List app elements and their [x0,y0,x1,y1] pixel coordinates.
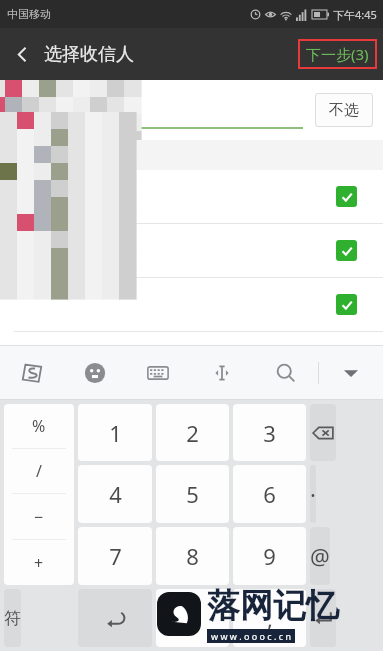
button[interactable]: 7 [78,527,152,585]
button[interactable]: 5 [156,465,229,523]
staticText: % [32,415,46,437]
staticText: , [267,603,273,633]
other: 已选中 [336,240,357,261]
staticText: − [34,506,44,528]
button[interactable]: 搜索 [254,346,318,399]
staticText: · [310,479,316,509]
button[interactable]: 1 [78,404,152,461]
staticText: w w w . o o o c . c n [211,630,291,642]
staticText: 0 [186,603,199,633]
button[interactable]: 收起键盘 [319,346,383,399]
other: 已选中 [336,186,357,207]
button[interactable]: 不选 [315,93,373,127]
button[interactable]: 输入法 [0,346,63,399]
button[interactable]: 确定 [310,589,336,647]
staticText: 9 [263,541,276,571]
staticText: 7 [109,541,122,571]
button[interactable]: 符 [4,589,21,647]
button[interactable]: 4 [78,465,152,523]
button[interactable]: 已选中 [0,278,383,331]
button[interactable]: @ [310,527,330,585]
staticText: 联系人 [10,148,46,163]
staticText: 5 [186,479,199,509]
button[interactable]: 0 [156,589,229,647]
button[interactable]: 2 [156,404,229,461]
staticText: 落网记忆 [207,585,339,627]
staticText: 2 [186,418,199,448]
button[interactable]: % [4,404,74,448]
staticText: + [34,552,44,574]
staticText: 下一步(3) [306,44,369,64]
staticText: 1 [109,418,122,448]
button[interactable]: 返回 [78,589,152,647]
button[interactable]: · [310,465,316,523]
button[interactable]: 返回 [0,32,44,76]
staticText: 不选 [329,101,359,120]
button[interactable]: 6 [233,465,306,523]
button[interactable]: 删除 [310,404,336,461]
staticText: / [36,460,42,482]
button[interactable]: 表情 [63,346,126,399]
button[interactable]: − [4,494,74,539]
other: 已选中 [336,294,357,315]
button[interactable]: / [4,449,74,493]
staticText: 6 [263,479,276,509]
button[interactable]: 移动光标 [190,346,254,399]
staticText: 4 [109,479,122,509]
button[interactable]: 已选中 [0,224,383,277]
staticText: 中国移动 [7,7,51,21]
button[interactable]: 已选中 [0,170,383,223]
staticText: 选择收信人 [44,43,134,66]
button[interactable]: 8 [156,527,229,585]
staticText: 符 [4,608,21,629]
button[interactable]: + [4,540,74,585]
button[interactable]: 3 [233,404,306,461]
staticText: @ [310,541,330,571]
button[interactable]: , [233,589,306,647]
staticText: 3 [263,418,276,448]
button[interactable]: 下一步(3) [298,39,377,69]
button[interactable]: 键盘 [126,346,190,399]
button[interactable]: 9 [233,527,306,585]
staticText: 下午4:45 [333,7,377,22]
staticText: 1233 [12,91,56,117]
staticText: 8 [186,541,199,571]
